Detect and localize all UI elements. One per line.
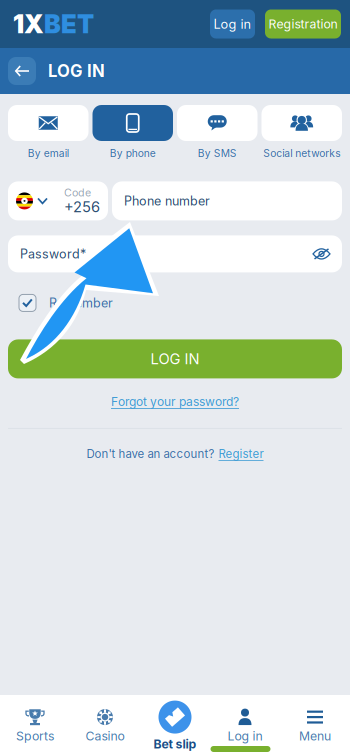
button[interactable]: Register [218, 447, 263, 461]
button[interactable]: Remember [19, 294, 113, 311]
button[interactable]: By phone [92, 105, 173, 159]
staticText: Don't have an account? [86, 447, 214, 461]
staticText: Sports [16, 729, 54, 743]
staticText: By SMS [198, 147, 237, 159]
button[interactable]: Forgot your password? [111, 389, 239, 414]
button[interactable]: Log in [210, 9, 255, 38]
button[interactable]: Log in [210, 709, 280, 743]
staticText: Phone number [124, 193, 210, 208]
staticText: Log in [227, 729, 262, 743]
staticText: By phone [110, 147, 156, 159]
staticText: Code [64, 186, 91, 199]
button[interactable]: By email [8, 105, 88, 159]
staticText: Menu [299, 729, 331, 743]
button[interactable]: By SMS [177, 105, 257, 159]
button[interactable]: Menu [280, 709, 350, 743]
staticText: Forgot your password? [111, 394, 239, 409]
button[interactable]: Casino [70, 709, 140, 743]
staticText: Casino [85, 729, 124, 743]
button[interactable]: Registration [265, 9, 341, 38]
button[interactable]: Sports [0, 709, 70, 743]
button[interactable]: Password* [8, 235, 342, 272]
staticText: Bet slip [153, 737, 196, 751]
staticText: Register [218, 447, 263, 461]
button[interactable]: LOG IN [8, 339, 342, 378]
staticText: BET [44, 9, 94, 39]
button[interactable]: Code [8, 181, 108, 220]
staticText: +256 [64, 198, 100, 216]
staticText: Registration [268, 17, 337, 31]
button[interactable]: Social networks [261, 105, 342, 159]
button[interactable]: Phone number [112, 181, 342, 220]
staticText: Log in [213, 16, 251, 32]
staticText: 1X [13, 9, 44, 39]
staticText: Social networks [263, 147, 340, 159]
staticText: Password* [20, 246, 86, 261]
button[interactable]: Bet slip [140, 701, 210, 751]
staticText: LOG IN [150, 350, 199, 368]
button[interactable]: Back [8, 57, 36, 85]
staticText: Remember [49, 295, 113, 310]
staticText: LOG IN [48, 61, 105, 81]
staticText: By email [28, 147, 69, 159]
